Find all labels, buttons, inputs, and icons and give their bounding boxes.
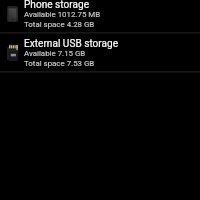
staticText: Total space 4.28 GB (24, 20, 95, 29)
other: Phone storage (7, 6, 18, 22)
staticText: Total space 7.53 GB (24, 59, 95, 68)
staticText: Available 7.15 GB (24, 49, 86, 58)
staticText: External USB storage (24, 38, 119, 50)
button[interactable]: Phone storage (0, 0, 200, 32)
staticText: Phone storage (24, 0, 90, 11)
other: External USB storage (7, 43, 18, 61)
staticText: Available 1012.75 MB (24, 10, 101, 19)
button[interactable]: External USB storage (0, 32, 200, 71)
